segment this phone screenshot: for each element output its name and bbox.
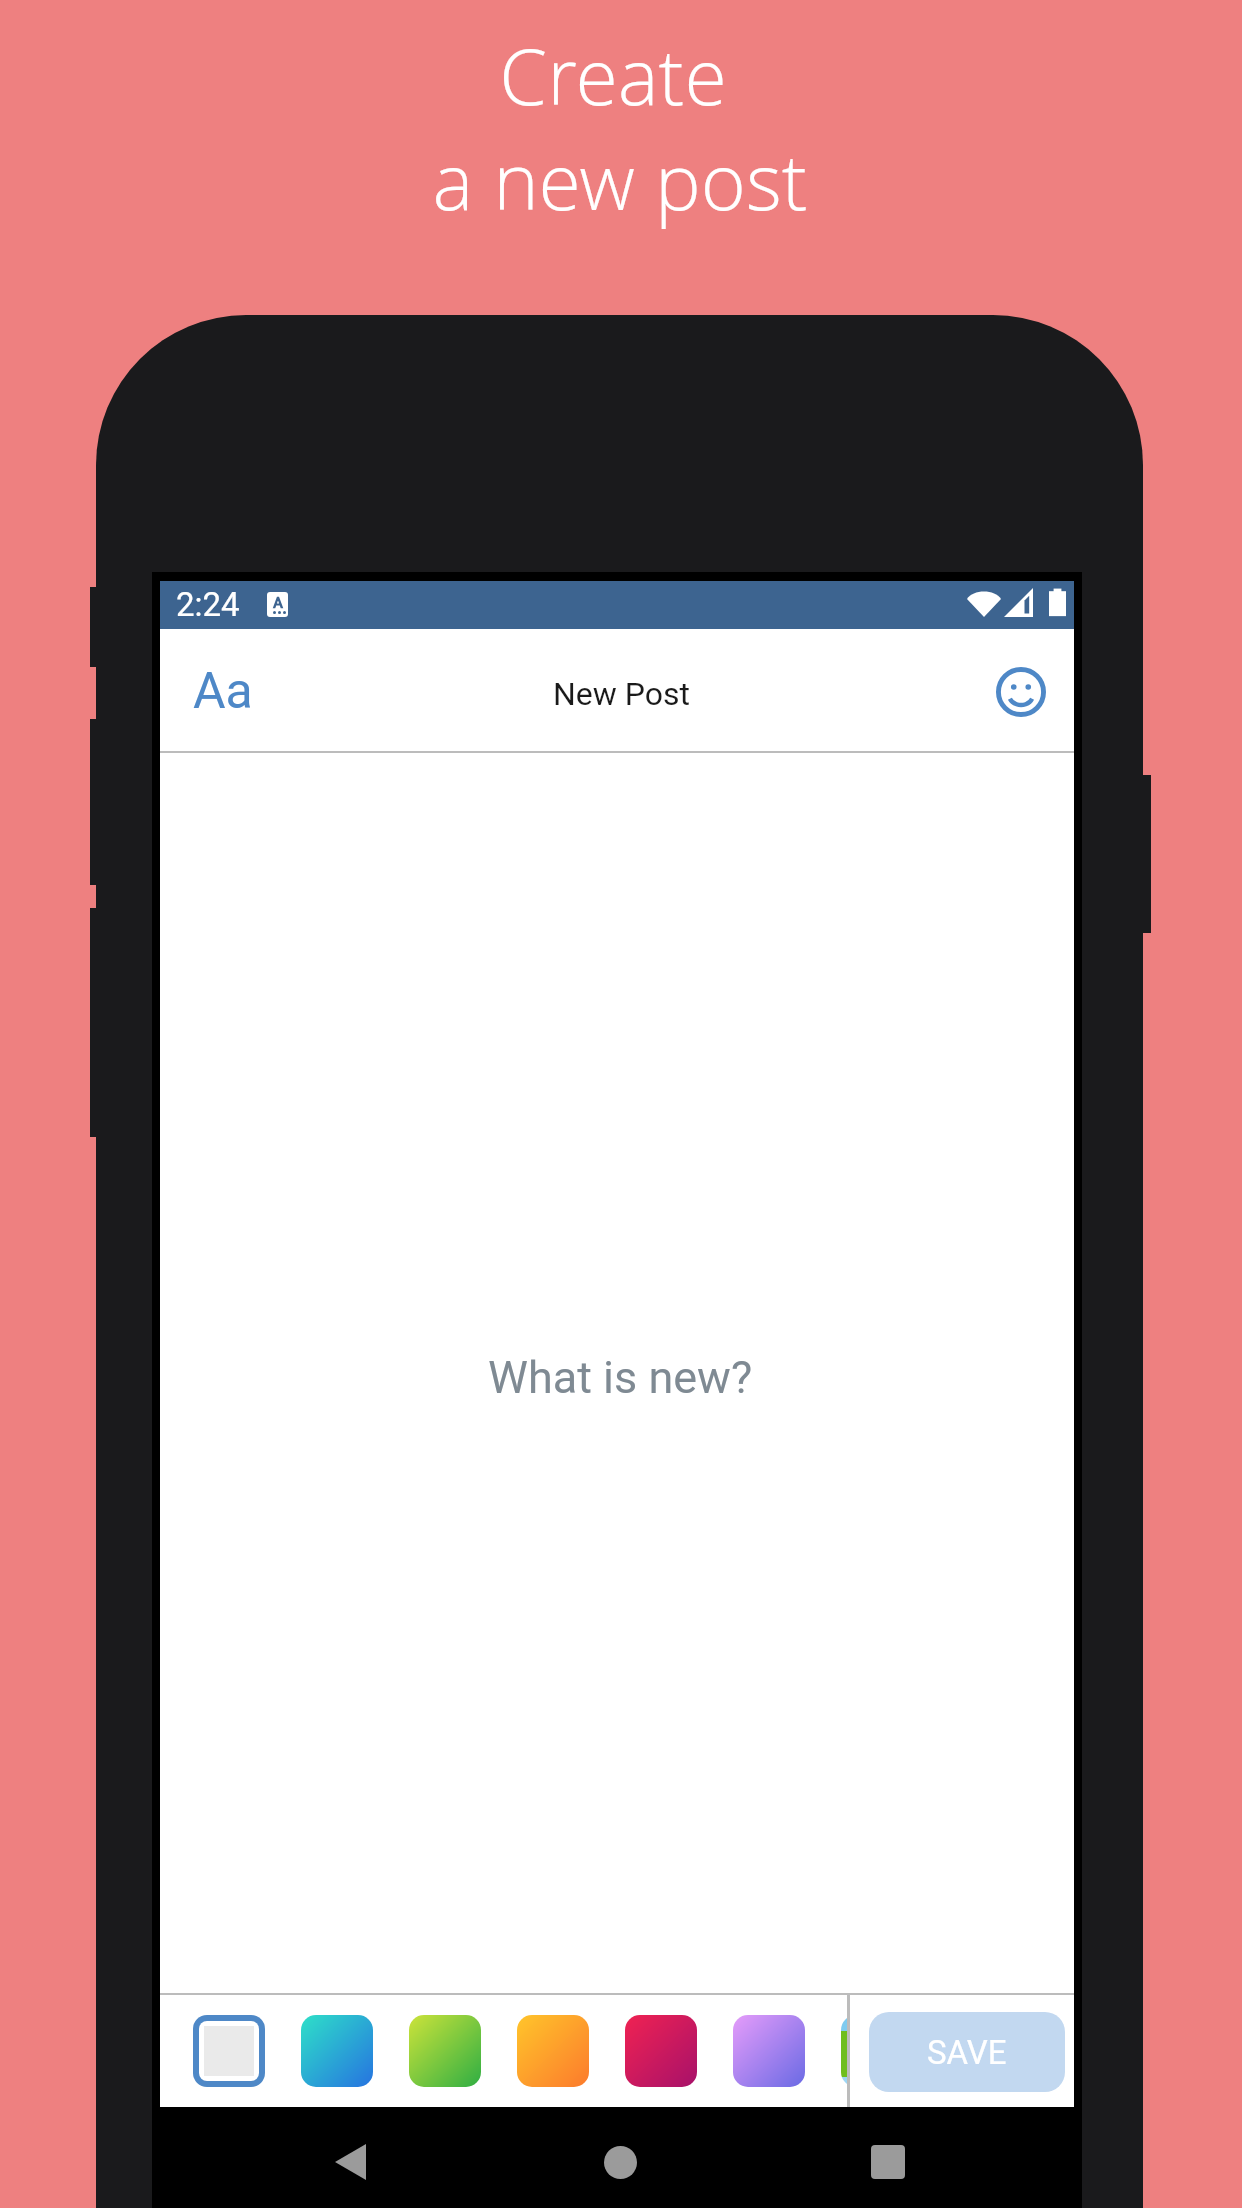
button[interactable]: Post text field	[160, 753, 1074, 1993]
staticText: What is new?	[488, 1351, 753, 1404]
button[interactable]: Back	[312, 2124, 388, 2200]
staticText: a new post	[432, 128, 808, 233]
button[interactable]: Home	[582, 2124, 658, 2200]
button[interactable]: Recent apps	[850, 2124, 926, 2200]
button[interactable]: Background colour	[733, 2015, 805, 2087]
button[interactable]: Background colour	[409, 2015, 481, 2087]
staticText: A	[273, 594, 283, 612]
staticText: SAVE	[927, 2033, 1007, 2072]
button[interactable]: Background colour	[625, 2015, 697, 2087]
button[interactable]: Background colour	[517, 2015, 589, 2087]
button[interactable]: No colour	[193, 2015, 265, 2087]
button[interactable]: SAVE	[869, 2012, 1065, 2092]
button[interactable]: Background colour	[301, 2015, 373, 2087]
button[interactable]: Background colour	[841, 2015, 847, 2087]
button[interactable]: Insert emoji	[968, 638, 1074, 742]
staticText: 2:24	[176, 585, 240, 624]
staticText: New Post	[553, 675, 690, 713]
staticText: Create	[499, 23, 727, 128]
staticText: Aa	[193, 662, 253, 721]
button[interactable]: Aa	[160, 633, 293, 747]
